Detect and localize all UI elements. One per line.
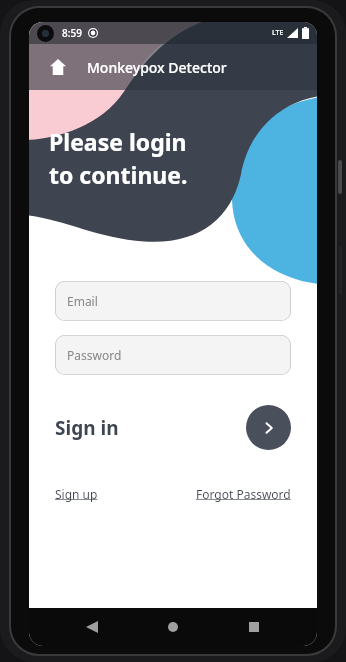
button[interactable]: Home — [41, 50, 75, 84]
staticText: Password — [67, 347, 122, 363]
staticText: 8:59 — [62, 26, 82, 40]
staticText: Email — [67, 293, 98, 309]
staticText: Sign up — [55, 486, 98, 502]
staticText: Forgot Password — [196, 486, 291, 502]
staticText: Monkeypox Detector — [87, 58, 227, 77]
button[interactable]: Password — [55, 335, 291, 375]
button[interactable]: Email — [55, 281, 291, 321]
button[interactable]: Recent apps — [236, 609, 272, 645]
staticText: Please login — [49, 126, 187, 157]
button[interactable]: Forgot Password — [196, 486, 291, 502]
button[interactable]: Back — [74, 609, 110, 645]
staticText: LTE — [272, 28, 284, 38]
button[interactable]: Sign up — [55, 486, 98, 502]
staticText: to continue. — [49, 159, 188, 190]
button[interactable]: Home — [155, 609, 191, 645]
button[interactable]: Sign in — [55, 415, 119, 441]
button[interactable]: Sign in — [246, 405, 291, 450]
